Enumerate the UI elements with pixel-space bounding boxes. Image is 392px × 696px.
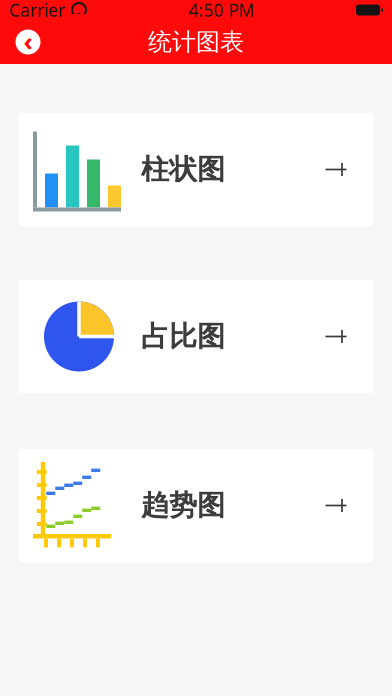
button[interactable]: 趋势图 [0,449,392,562]
staticText: 柱状图 [141,152,225,187]
staticText: 趋势图 [141,488,225,523]
staticText: 占比图 [141,319,225,354]
staticText: 统计图表 [148,27,244,57]
staticText: 4:50 PM [188,0,254,21]
button[interactable]: 柱状图 [0,113,392,226]
button[interactable]: 占比图 [0,280,392,393]
staticText: ‹ [23,24,32,58]
button[interactable]: Back [6,20,50,64]
staticText: Carrier [9,0,65,21]
